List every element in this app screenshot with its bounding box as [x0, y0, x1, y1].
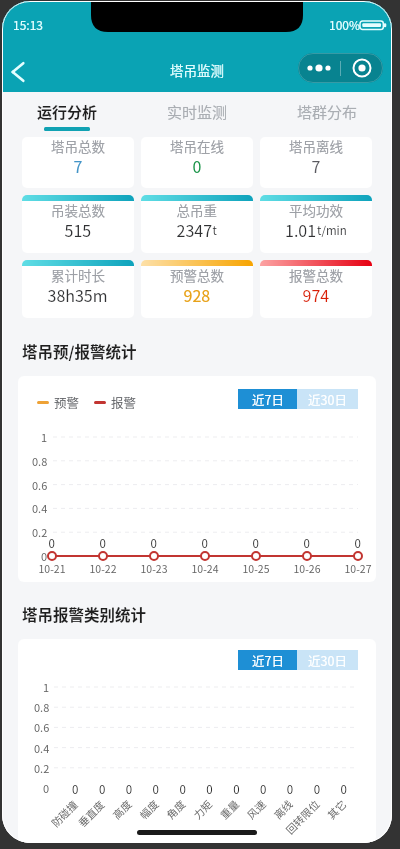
- staticText: 塔吊监测: [170, 60, 224, 80]
- button[interactable]: 近7日: [238, 650, 297, 670]
- staticText: 预警: [54, 393, 80, 411]
- staticText: 实时监测: [167, 101, 228, 123]
- button[interactable]: 近30日: [297, 389, 358, 409]
- staticText: 近7日: [252, 390, 284, 408]
- button[interactable]: [141, 260, 253, 318]
- button[interactable]: 实时监测: [132, 92, 262, 137]
- button[interactable]: [22, 260, 134, 318]
- staticText: 近30日: [308, 651, 347, 669]
- button[interactable]: [141, 137, 253, 188]
- button[interactable]: [141, 195, 253, 253]
- button[interactable]: 运行分析: [2, 92, 132, 137]
- button[interactable]: Back: [2, 54, 36, 88]
- button[interactable]: [260, 195, 372, 253]
- staticText: 15:13: [13, 16, 43, 33]
- button[interactable]: [260, 260, 372, 318]
- staticText: 塔群分布: [297, 101, 358, 123]
- button[interactable]: 近30日: [297, 650, 358, 670]
- staticText: 运行分析: [37, 101, 98, 123]
- staticText: 报警: [111, 393, 137, 411]
- button[interactable]: More: [298, 53, 340, 83]
- staticText: 塔吊预/报警统计: [22, 340, 137, 362]
- button[interactable]: Close: [341, 53, 383, 83]
- staticText: 近30日: [308, 390, 347, 408]
- button[interactable]: 塔群分布: [262, 92, 392, 137]
- button[interactable]: [260, 137, 372, 188]
- button[interactable]: 近7日: [238, 389, 297, 409]
- staticText: 100%: [329, 16, 361, 33]
- button[interactable]: [22, 137, 134, 188]
- staticText: 塔吊报警类别统计: [22, 603, 147, 625]
- button[interactable]: [22, 195, 134, 253]
- staticText: 近7日: [252, 651, 284, 669]
